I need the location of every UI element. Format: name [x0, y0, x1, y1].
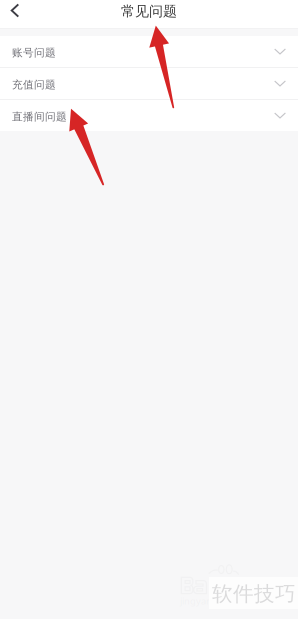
staticText: 软件技巧	[212, 581, 296, 607]
staticText: 账号问题	[12, 46, 56, 59]
button[interactable]: 账号问题	[0, 36, 298, 67]
button[interactable]: 充值问题	[0, 68, 298, 99]
staticText: 充值问题	[12, 78, 56, 91]
staticText: 常见问题	[121, 2, 177, 20]
button[interactable]: Back	[0, 0, 30, 28]
staticText: 直播间问题	[12, 110, 67, 123]
button[interactable]: 直播间问题	[0, 100, 298, 131]
